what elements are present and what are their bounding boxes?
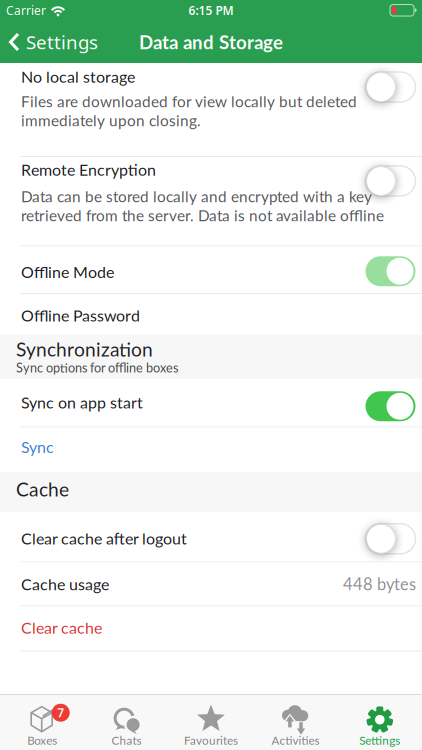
staticText: Sync on app start [21,393,143,412]
staticText: Offline Password [21,306,140,325]
staticText: 7 [57,705,64,721]
staticText: No local storage [21,67,135,86]
staticText: Favourites [184,733,238,747]
button[interactable]: 7 [0,695,84,747]
staticText: retrieved from the server. Data is not a… [21,206,384,225]
button[interactable]: Sync [0,427,422,472]
staticText: Sync [21,437,54,456]
button[interactable]: Activities [253,695,338,747]
staticText: Clear cache after logout [21,529,187,548]
staticText: Cache usage [21,574,109,594]
staticText: Data and Storage [139,31,283,53]
staticText: Files are downloaded for view locally bu… [21,92,357,111]
staticText: Carrier [6,2,46,18]
button[interactable]: Chats [84,695,169,747]
button[interactable]: Clear cache after logout [365,524,422,554]
staticText: Data can be stored locally and encrypted… [21,187,372,206]
button[interactable]: No local storage [365,72,422,102]
staticText: Settings [26,30,98,54]
button[interactable]: Settings [338,695,422,747]
staticText: Remote Encryption [21,160,156,179]
staticText: Clear cache [21,618,102,637]
staticText: Boxes [27,733,57,747]
staticText: Chats [112,733,142,747]
staticText: Synchronization [16,337,153,360]
staticText: Settings [359,733,400,747]
staticText: Sync options for offline boxes [16,360,178,375]
button[interactable]: Remote Encryption [365,166,422,196]
button[interactable]: Favourites [169,695,253,747]
button[interactable]: Clear cache [0,606,422,650]
staticText: 448 bytes [343,574,416,594]
button[interactable]: Offline Mode [365,256,422,286]
staticText: 6:15 PM [188,2,233,18]
button[interactable]: Offline Password [0,294,422,334]
staticText: Activities [271,733,319,747]
staticText: Cache [16,477,69,500]
staticText: immediately upon closing. [21,111,201,130]
button[interactable]: Sync on app start [365,391,422,421]
button[interactable]: Settings [0,30,98,54]
staticText: Offline Mode [21,262,114,281]
